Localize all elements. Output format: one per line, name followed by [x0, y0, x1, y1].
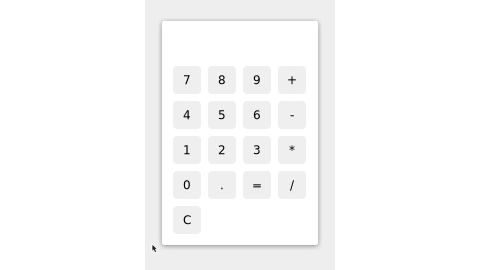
staticText: -: [290, 108, 294, 122]
button[interactable]: +: [278, 66, 306, 94]
staticText: 4: [183, 108, 191, 122]
staticText: 6: [253, 108, 261, 122]
button[interactable]: .: [208, 171, 236, 199]
staticText: =: [252, 178, 262, 192]
button[interactable]: *: [278, 136, 306, 164]
staticText: 8: [218, 73, 226, 87]
button[interactable]: 0: [173, 171, 201, 199]
staticText: 1: [183, 143, 191, 157]
button[interactable]: 2: [208, 136, 236, 164]
staticText: 2: [218, 143, 226, 157]
button[interactable]: 7: [173, 66, 201, 94]
staticText: *: [289, 143, 295, 157]
button[interactable]: 6: [243, 101, 271, 129]
button[interactable]: 4: [173, 101, 201, 129]
staticText: +: [287, 73, 297, 87]
button[interactable]: 3: [243, 136, 271, 164]
button[interactable]: 8: [208, 66, 236, 94]
button[interactable]: =: [243, 171, 271, 199]
button[interactable]: 5: [208, 101, 236, 129]
staticText: 3: [253, 143, 261, 157]
button[interactable]: -: [278, 101, 306, 129]
button[interactable]: C: [173, 206, 201, 234]
staticText: 7: [183, 73, 191, 87]
staticText: 5: [218, 108, 226, 122]
staticText: 9: [253, 73, 261, 87]
button[interactable]: /: [278, 171, 306, 199]
staticText: C: [183, 213, 191, 227]
button[interactable]: 1: [173, 136, 201, 164]
staticText: /: [290, 178, 294, 192]
staticText: .: [220, 178, 224, 192]
staticText: 0: [183, 178, 191, 192]
button[interactable]: 9: [243, 66, 271, 94]
